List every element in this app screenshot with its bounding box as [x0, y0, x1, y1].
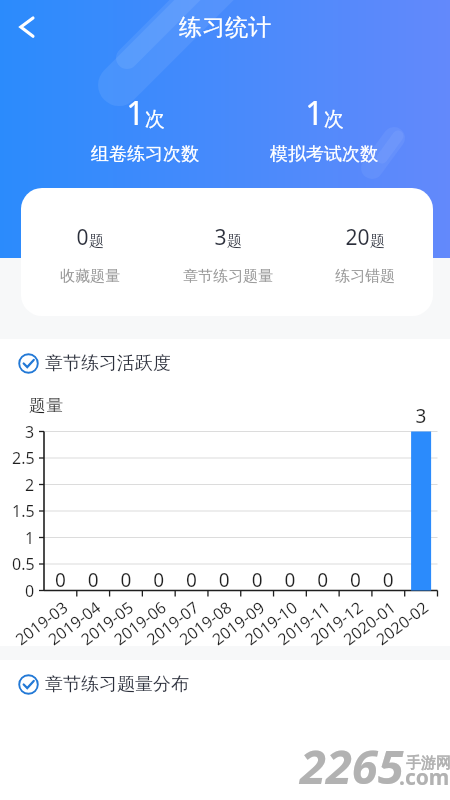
staticText: 模拟考试次数: [270, 143, 378, 166]
staticText: 题: [227, 232, 242, 251]
staticText: 章节练习活跃度: [45, 352, 171, 375]
button[interactable]: 章节练习题量分布: [18, 660, 450, 709]
staticText: 组卷练习次数: [91, 143, 199, 166]
staticText: .com: [399, 763, 450, 792]
staticText: 章节练习题量: [183, 267, 273, 286]
staticText: 手游网: [406, 754, 450, 773]
staticText: 1: [126, 91, 145, 135]
staticText: 题: [89, 232, 104, 251]
staticText: 章节练习题量分布: [45, 673, 189, 696]
staticText: 练习统计: [179, 13, 271, 42]
staticText: 练习错题: [335, 267, 395, 286]
staticText: 3: [214, 223, 227, 252]
staticText: 20: [345, 223, 370, 252]
staticText: 收藏题量: [60, 267, 120, 286]
staticText: 题: [370, 232, 385, 251]
staticText: 1: [305, 91, 324, 135]
staticText: 0: [76, 223, 89, 252]
staticText: 2265: [300, 734, 404, 798]
staticText: 次: [145, 107, 165, 132]
button[interactable]: 章节练习活跃度: [18, 339, 450, 388]
staticText: 次: [324, 107, 344, 132]
button[interactable]: Back: [4, 4, 50, 50]
